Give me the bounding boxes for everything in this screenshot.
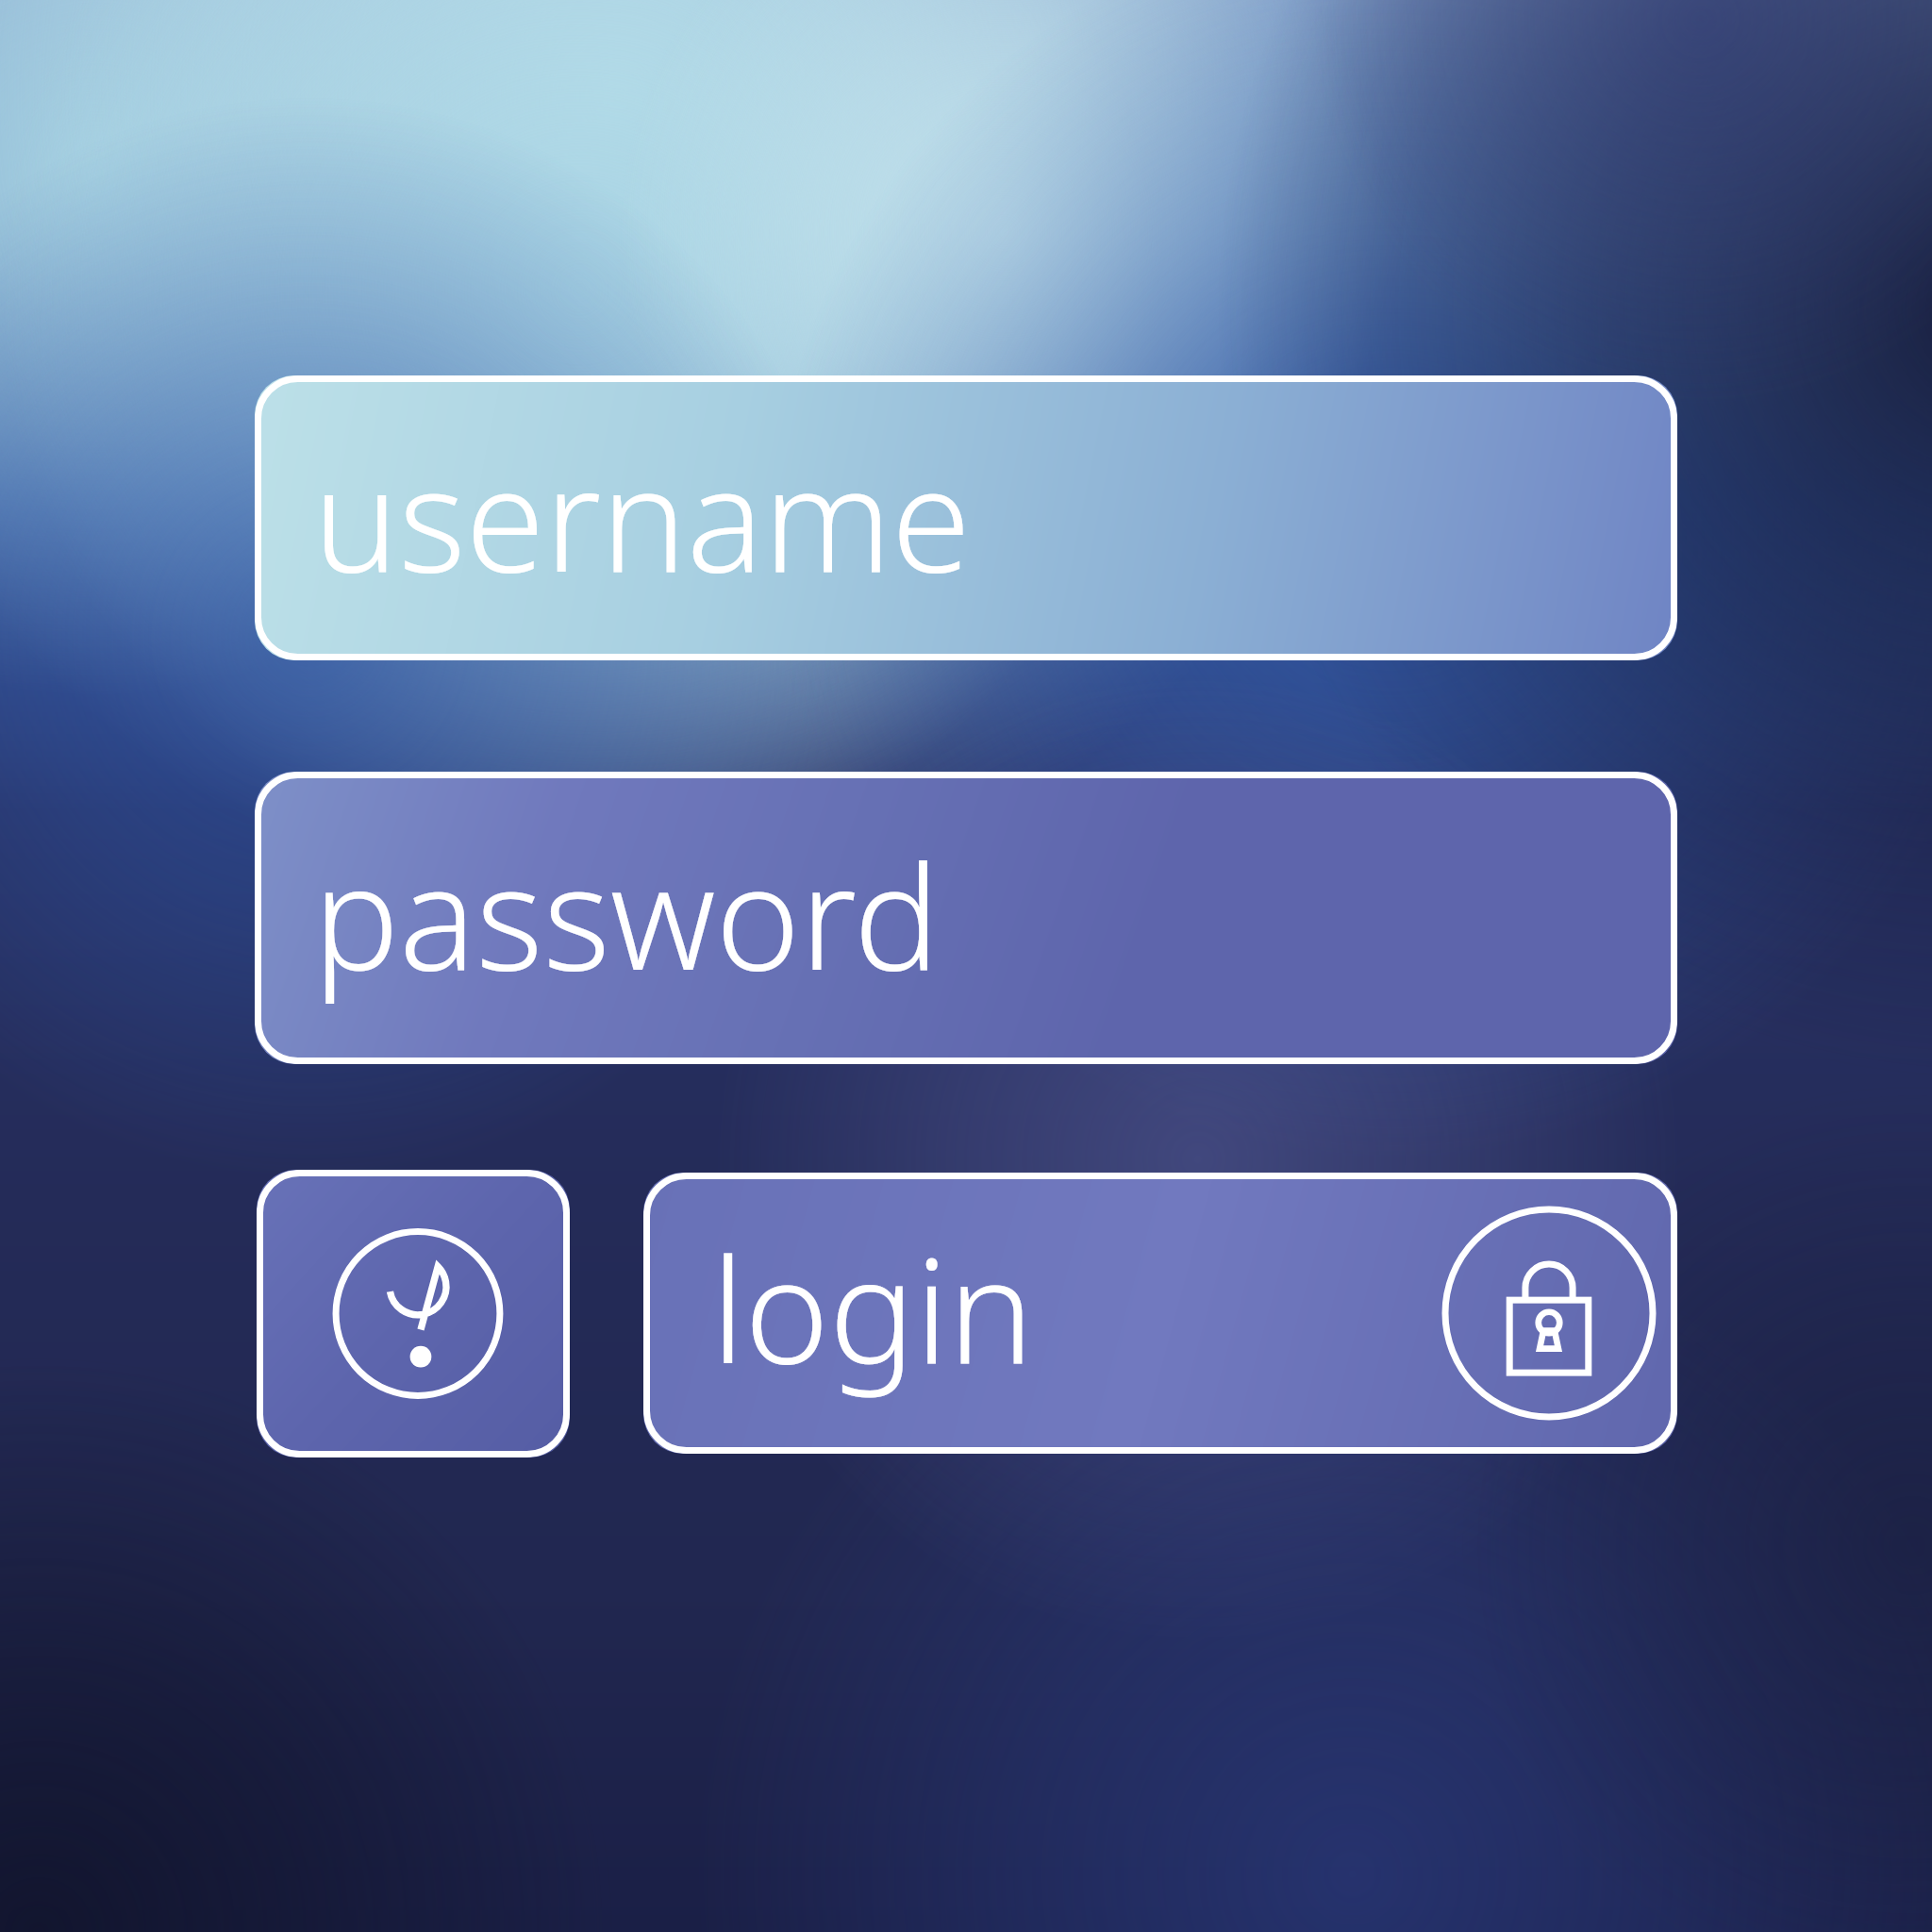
staticText: password (313, 817, 941, 1012)
button[interactable]: username (255, 375, 1677, 660)
staticText: login (711, 1210, 1034, 1406)
button[interactable]: Help (257, 1170, 570, 1457)
button[interactable]: login (643, 1173, 1677, 1454)
button[interactable]: password (255, 772, 1677, 1064)
staticText: username (313, 419, 971, 614)
